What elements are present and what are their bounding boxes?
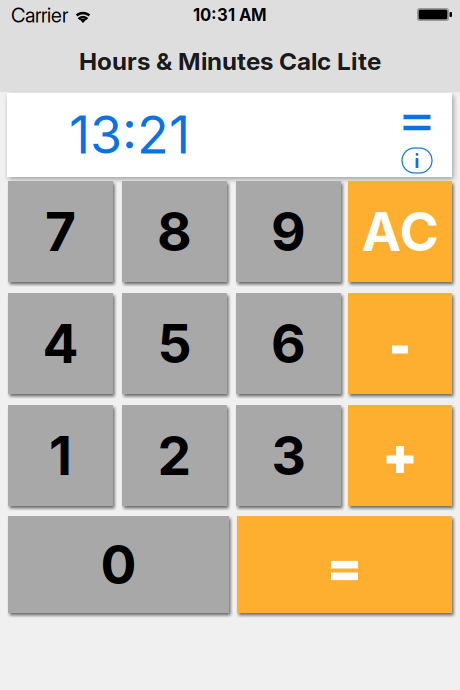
button[interactable]: 2 bbox=[122, 405, 227, 506]
staticText: 2 bbox=[157, 423, 191, 488]
staticText: 5 bbox=[157, 311, 191, 376]
button[interactable]: 6 bbox=[236, 293, 341, 394]
button[interactable]: Info bbox=[393, 140, 441, 181]
button[interactable]: 5 bbox=[122, 293, 227, 394]
staticText: 4 bbox=[42, 311, 78, 376]
staticText: Hours & Minutes Calc Lite bbox=[79, 46, 381, 76]
button[interactable]: 7 bbox=[8, 181, 113, 282]
button[interactable]: Equals bbox=[393, 102, 441, 143]
button[interactable]: 1 bbox=[8, 405, 113, 506]
button[interactable]: 9 bbox=[236, 181, 341, 282]
button[interactable]: Equals bbox=[237, 516, 452, 613]
staticText: 3 bbox=[271, 423, 305, 488]
button[interactable]: 8 bbox=[122, 181, 227, 282]
staticText: 13:21 bbox=[69, 103, 190, 166]
button[interactable]: All clear bbox=[348, 181, 452, 282]
staticText: Carrier bbox=[11, 3, 68, 27]
button[interactable]: 0 bbox=[8, 516, 229, 613]
button[interactable]: Minus bbox=[348, 293, 452, 394]
staticText: 7 bbox=[45, 199, 76, 264]
staticText: 1 bbox=[49, 423, 72, 488]
staticText: 0 bbox=[100, 532, 136, 597]
staticText: 8 bbox=[157, 199, 192, 264]
staticText: 6 bbox=[271, 311, 306, 376]
staticText: 9 bbox=[271, 199, 306, 264]
button[interactable]: 4 bbox=[8, 293, 113, 394]
staticText: 10:31 AM bbox=[193, 5, 267, 25]
button[interactable]: 3 bbox=[236, 405, 341, 506]
staticText: AC bbox=[361, 199, 438, 264]
button[interactable]: Plus bbox=[348, 405, 452, 506]
